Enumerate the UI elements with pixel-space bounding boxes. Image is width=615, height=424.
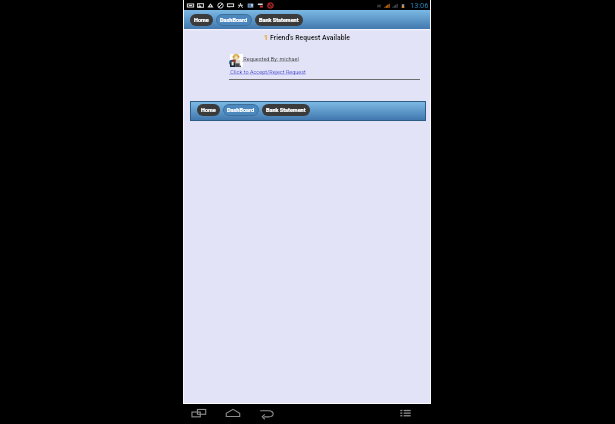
button[interactable]: Requested By: michael [242,56,301,62]
button[interactable]: Recents [191,405,207,421]
staticText: Friend's Request Available [270,34,350,42]
button[interactable]: Bank Statement [262,104,310,116]
staticText: 1 [264,34,268,42]
staticText: Bank Statement [266,107,306,113]
button[interactable]: Menu [399,406,412,419]
staticText: DashBoard [227,107,255,113]
staticText: Bank Statement [259,17,299,23]
button[interactable]: Click to Accept/Reject Request [229,69,306,75]
button[interactable]: Bank Statement [255,14,303,26]
button[interactable]: Home [190,14,213,26]
staticText: Home [194,17,209,23]
staticText: DashBoard [220,17,248,23]
staticText: Home [201,107,216,113]
button[interactable]: DashBoard [216,14,252,26]
button[interactable]: Home [197,104,220,116]
button[interactable]: DashBoard [223,104,259,116]
button[interactable]: Back [259,405,275,421]
staticText: 13:06 [410,1,429,10]
button[interactable]: Home [225,405,241,421]
